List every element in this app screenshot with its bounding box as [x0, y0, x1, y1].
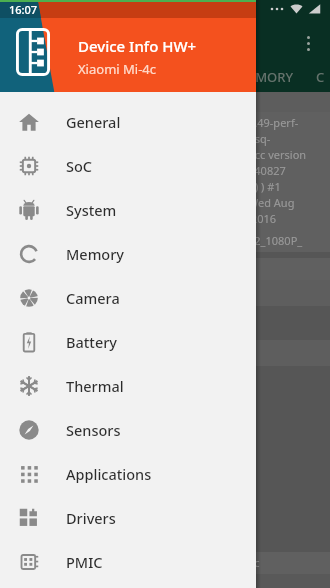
staticText: C) ) #1 — [248, 179, 281, 194]
staticText: General — [66, 112, 121, 132]
button[interactable]: CAMERA — [316, 68, 330, 86]
button[interactable]: Battery — [0, 320, 256, 364]
button[interactable]: Memory — [0, 232, 256, 276]
button[interactable]: Sensors — [0, 408, 256, 452]
staticText: 0.49-perf- — [248, 115, 299, 130]
staticText: MEMORY — [236, 68, 294, 86]
button[interactable]: General — [0, 100, 256, 144]
staticText: Drivers — [66, 508, 116, 528]
button[interactable]: MEMORY — [236, 68, 294, 86]
staticText: Memory — [66, 244, 125, 264]
staticText: SoC — [66, 156, 93, 176]
staticText: Battery — [66, 332, 117, 352]
button[interactable]: More options — [296, 30, 320, 54]
button[interactable]: Thermal — [0, 364, 256, 408]
staticText: Camera — [66, 288, 120, 308]
staticText: CAMERA — [316, 68, 330, 86]
button[interactable]: Drivers — [0, 496, 256, 540]
staticText: Device Info HW+ — [78, 36, 197, 56]
button[interactable]: Applications — [0, 452, 256, 496]
button[interactable]: Camera — [0, 276, 256, 320]
button[interactable]: System — [0, 188, 256, 232]
staticText: 140827 — [248, 163, 286, 178]
staticText: Wed Aug — [248, 195, 295, 210]
staticText: System — [66, 200, 117, 220]
button[interactable]: PMIC — [0, 540, 256, 584]
staticText: gcc version — [248, 147, 307, 162]
staticText: 22_1080P_ — [248, 233, 303, 248]
staticText: Sensors — [66, 420, 121, 440]
button[interactable]: SoC — [0, 144, 256, 188]
staticText: 2c — [248, 555, 260, 570]
staticText: Applications — [66, 464, 152, 484]
staticText: bsq- — [248, 131, 271, 146]
staticText: Xiaomi Mi-4c — [78, 60, 157, 78]
staticText: 2016 — [248, 211, 277, 226]
staticText: PMIC — [66, 552, 103, 572]
staticText: Thermal — [66, 376, 124, 396]
staticText: 16:07 — [9, 2, 38, 17]
